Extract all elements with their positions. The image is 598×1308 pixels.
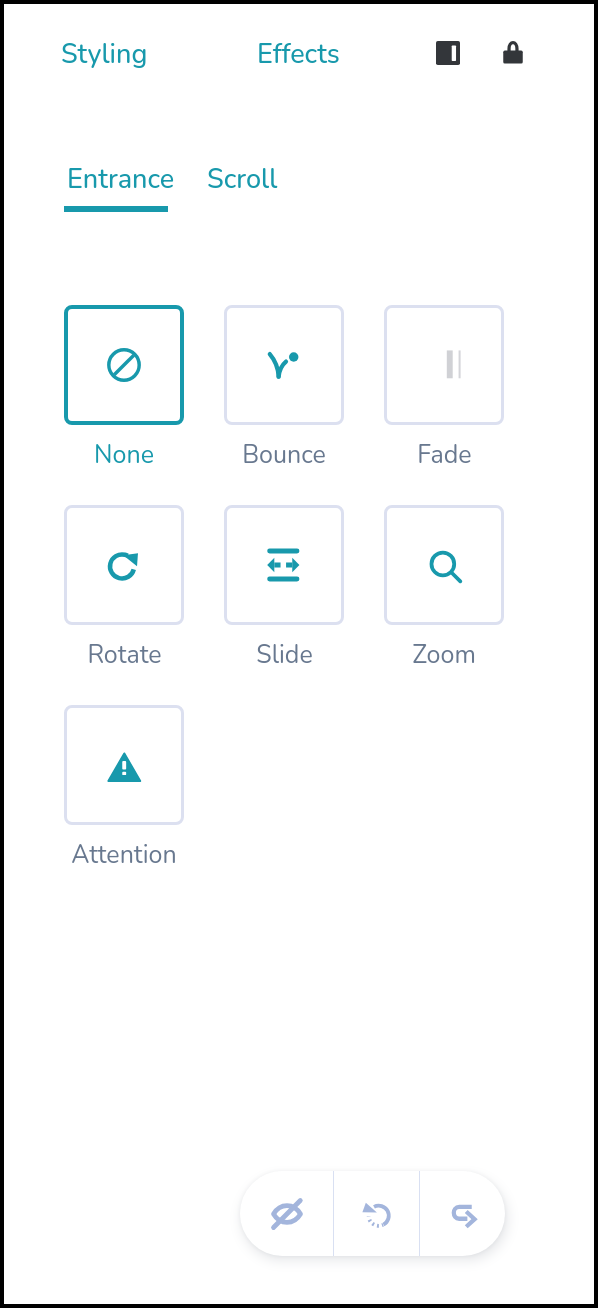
staticText: Attention [71, 838, 177, 872]
button[interactable]: Bounce [220, 301, 348, 472]
staticText: Effects [257, 36, 340, 73]
button[interactable]: Lock [490, 29, 536, 75]
button[interactable]: None [60, 301, 188, 472]
button[interactable]: Redo [420, 1171, 505, 1256]
button[interactable]: Scroll [201, 161, 284, 198]
button[interactable]: Hide preview [240, 1171, 333, 1256]
button[interactable]: Slide [220, 501, 348, 672]
button[interactable]: Fade [380, 301, 508, 472]
staticText: None [94, 438, 154, 472]
button[interactable]: Zoom [380, 501, 508, 672]
staticText: Zoom [412, 638, 476, 672]
button[interactable]: Effects [257, 36, 340, 73]
button[interactable]: Entrance [61, 161, 181, 198]
button[interactable]: Attention [60, 701, 188, 872]
staticText: Fade [417, 438, 472, 472]
staticText: Scroll [207, 161, 278, 198]
button[interactable]: Undo [334, 1171, 419, 1256]
button[interactable]: Layout [426, 31, 470, 75]
staticText: Styling [61, 36, 148, 73]
staticText: Slide [256, 638, 313, 672]
staticText: Rotate [87, 638, 162, 672]
button[interactable]: Rotate [60, 501, 188, 672]
staticText: Bounce [242, 438, 326, 472]
button[interactable]: Styling [61, 36, 148, 73]
staticText: Entrance [67, 161, 175, 198]
